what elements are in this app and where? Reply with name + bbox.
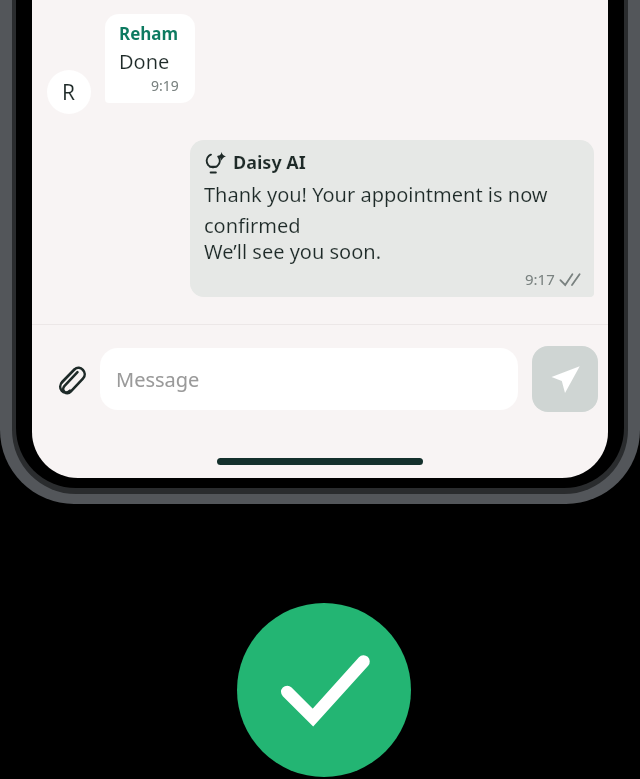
button[interactable]: Send	[532, 346, 598, 412]
button[interactable]: Confirmed	[237, 603, 411, 777]
staticText: 9:17	[525, 269, 555, 289]
button[interactable]: Attach file	[46, 355, 94, 403]
staticText: R	[62, 78, 76, 107]
button[interactable]: Daisy AI	[190, 140, 594, 297]
staticText: Done	[119, 48, 170, 75]
staticText: Daisy AI	[233, 150, 306, 175]
staticText: 9:19	[151, 76, 179, 95]
staticText: Thank you! Your appointment is now confi…	[204, 181, 580, 238]
button[interactable]: Reham	[105, 14, 195, 103]
staticText: We’ll see you soon.	[204, 238, 381, 265]
staticText: Reham	[119, 22, 179, 45]
button[interactable]: Reham avatar	[47, 70, 91, 114]
button[interactable]: Message	[100, 348, 518, 410]
staticText: Message	[116, 366, 200, 393]
